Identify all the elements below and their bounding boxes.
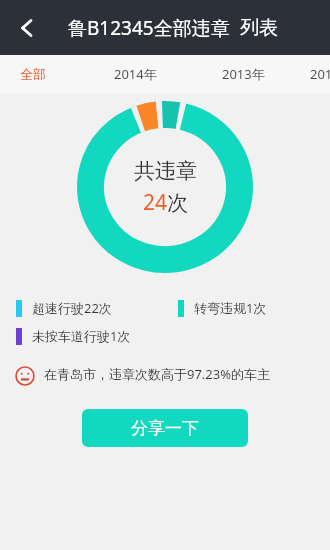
staticText: 鲁B12345全部违章 <box>68 15 230 41</box>
staticText: 2013年 <box>222 65 265 83</box>
button[interactable]: 超速行驶22次 <box>16 299 112 317</box>
other: Warning face <box>14 365 36 387</box>
staticText: 未按车道行驶1次 <box>32 327 131 345</box>
button[interactable]: 转弯违规1次 <box>178 299 267 317</box>
staticText: 在青岛市，违章次数高于97.23%的车主 <box>44 365 271 383</box>
staticText: 超速行驶22次 <box>32 299 112 317</box>
button[interactable]: 2013年 <box>218 59 269 89</box>
staticText: 列表 <box>240 16 278 40</box>
button[interactable]: Back <box>0 0 54 55</box>
button[interactable]: 2012年 <box>310 59 330 89</box>
staticText: 共违章 <box>134 158 197 184</box>
button[interactable]: 分享一下 <box>82 409 248 447</box>
staticText: 24次 <box>143 188 189 217</box>
staticText: 分享一下 <box>131 418 199 439</box>
staticText: 2014年 <box>114 65 157 83</box>
button[interactable]: 未按车道行驶1次 <box>16 327 131 345</box>
staticText: 全部 <box>20 66 46 82</box>
staticText: 转弯违规1次 <box>194 299 267 317</box>
staticText: 2012年 <box>310 65 330 83</box>
button[interactable]: 2014年 <box>110 59 161 89</box>
button[interactable]: 全部 <box>16 60 50 88</box>
